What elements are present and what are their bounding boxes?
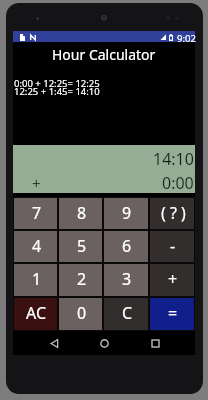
staticText: 1 xyxy=(32,268,42,290)
staticText: 3 xyxy=(122,268,132,290)
staticText: 0 xyxy=(77,302,87,324)
button[interactable]: 2 xyxy=(59,264,102,296)
staticText: 14:10 xyxy=(153,148,194,170)
staticText: C xyxy=(122,302,133,324)
staticText: + xyxy=(32,173,41,193)
button[interactable]: Recent apps xyxy=(139,331,171,355)
staticText: + xyxy=(168,268,178,290)
staticText: 8 xyxy=(77,202,87,224)
button[interactable]: AC xyxy=(14,298,57,330)
button[interactable]: 7 xyxy=(14,198,57,229)
staticText: 6 xyxy=(122,235,132,257)
button[interactable]: Home xyxy=(88,331,120,355)
staticText: AC xyxy=(26,302,47,324)
button[interactable]: 9 xyxy=(104,198,148,229)
staticText: Hour Calculator xyxy=(52,45,156,64)
staticText: 0:00 xyxy=(162,172,194,194)
button[interactable]: 8 xyxy=(59,198,102,229)
staticText: - xyxy=(170,235,176,257)
staticText: ( ? ) xyxy=(161,202,186,224)
button[interactable]: 5 xyxy=(59,231,102,262)
button[interactable]: C xyxy=(104,298,148,330)
staticText: 0:00 + 12:25= 12:25 12:25 + 1:45= 14:10 xyxy=(14,77,100,97)
staticText: = xyxy=(168,302,178,324)
staticText: 2 xyxy=(77,268,87,290)
staticText: 4 xyxy=(32,235,42,257)
button[interactable]: + xyxy=(150,264,194,296)
button[interactable]: Back xyxy=(38,331,70,355)
button[interactable]: 3 xyxy=(104,264,148,296)
button[interactable]: 4 xyxy=(14,231,57,262)
staticText: 9:02 xyxy=(177,32,196,43)
button[interactable]: = xyxy=(150,298,194,330)
button[interactable]: 0 xyxy=(59,298,102,330)
staticText: 7 xyxy=(32,202,42,224)
button[interactable]: 1 xyxy=(14,264,57,296)
staticText: 5 xyxy=(77,235,87,257)
button[interactable]: - xyxy=(150,231,194,262)
staticText: 9 xyxy=(122,202,132,224)
button[interactable]: 6 xyxy=(104,231,148,262)
button[interactable]: ( ? ) xyxy=(150,198,194,229)
